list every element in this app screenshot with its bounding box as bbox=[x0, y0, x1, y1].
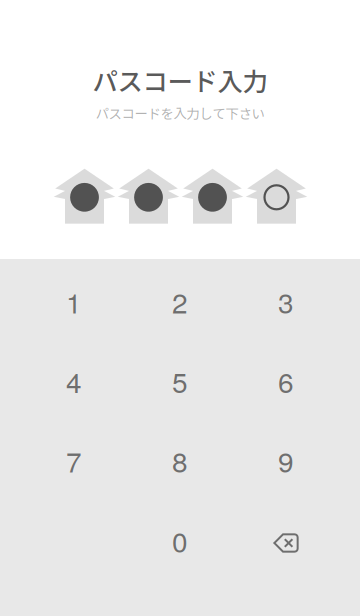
button[interactable]: 0 bbox=[127, 501, 233, 580]
button[interactable]: Delete bbox=[233, 501, 339, 580]
staticText: 8 bbox=[172, 440, 188, 481]
staticText: 3 bbox=[278, 281, 294, 322]
staticText: 9 bbox=[278, 440, 294, 481]
staticText: 5 bbox=[172, 361, 188, 401]
staticText: 2 bbox=[172, 281, 188, 322]
button[interactable]: 5 bbox=[127, 341, 233, 420]
button[interactable]: 6 bbox=[233, 341, 339, 420]
button[interactable]: 1 bbox=[21, 262, 127, 341]
staticText: 6 bbox=[278, 361, 294, 401]
staticText: パスコード入力 bbox=[92, 62, 267, 98]
button[interactable]: 9 bbox=[233, 421, 339, 500]
staticText: 4 bbox=[66, 361, 82, 401]
staticText: 0 bbox=[172, 520, 188, 561]
button[interactable]: 8 bbox=[127, 421, 233, 500]
button[interactable]: 4 bbox=[21, 341, 127, 420]
button[interactable]: 7 bbox=[21, 421, 127, 500]
button[interactable]: 2 bbox=[127, 262, 233, 341]
button[interactable]: 3 bbox=[233, 262, 339, 341]
staticText: 1 bbox=[66, 281, 82, 322]
staticText: 7 bbox=[66, 440, 82, 481]
staticText: パスコードを入力して下さい bbox=[95, 103, 264, 123]
